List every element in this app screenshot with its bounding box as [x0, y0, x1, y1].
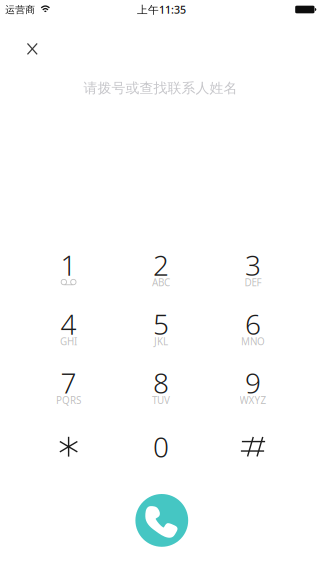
- button[interactable]: 0: [124, 419, 198, 475]
- staticText: 6: [245, 305, 261, 343]
- button[interactable]: [216, 419, 290, 475]
- staticText: 8: [153, 363, 169, 402]
- staticText: MNO: [241, 335, 265, 348]
- staticText: JKL: [154, 335, 168, 348]
- button[interactable]: 8: [124, 360, 198, 416]
- button[interactable]: Close: [10, 28, 54, 70]
- staticText: 3: [245, 246, 261, 284]
- button[interactable]: 3: [216, 242, 290, 298]
- staticText: 2: [153, 246, 169, 284]
- button[interactable]: 1: [32, 242, 106, 298]
- staticText: PQRS: [56, 393, 81, 407]
- button[interactable]: 7: [32, 360, 106, 416]
- staticText: 7: [61, 363, 77, 402]
- button[interactable]: 2: [124, 242, 198, 298]
- staticText: 运营商: [5, 4, 35, 16]
- button[interactable]: [32, 419, 106, 475]
- staticText: WXYZ: [239, 393, 266, 407]
- staticText: 5: [153, 305, 169, 343]
- button[interactable]: 5: [124, 301, 198, 357]
- staticText: GHI: [60, 335, 77, 348]
- button[interactable]: 6: [216, 301, 290, 357]
- button[interactable]: 9: [216, 360, 290, 416]
- button[interactable]: Call: [135, 494, 188, 547]
- staticText: DEF: [244, 276, 261, 289]
- staticText: 4: [61, 305, 77, 343]
- staticText: 请拨号或查找联系人姓名: [83, 79, 237, 97]
- staticText: ABC: [152, 276, 170, 289]
- staticText: 1: [61, 246, 77, 284]
- staticText: 0: [153, 428, 169, 466]
- button[interactable]: 4: [32, 301, 106, 357]
- staticText: 9: [245, 363, 261, 402]
- staticText: 上午11:35: [137, 2, 186, 17]
- staticText: TUV: [152, 393, 170, 407]
